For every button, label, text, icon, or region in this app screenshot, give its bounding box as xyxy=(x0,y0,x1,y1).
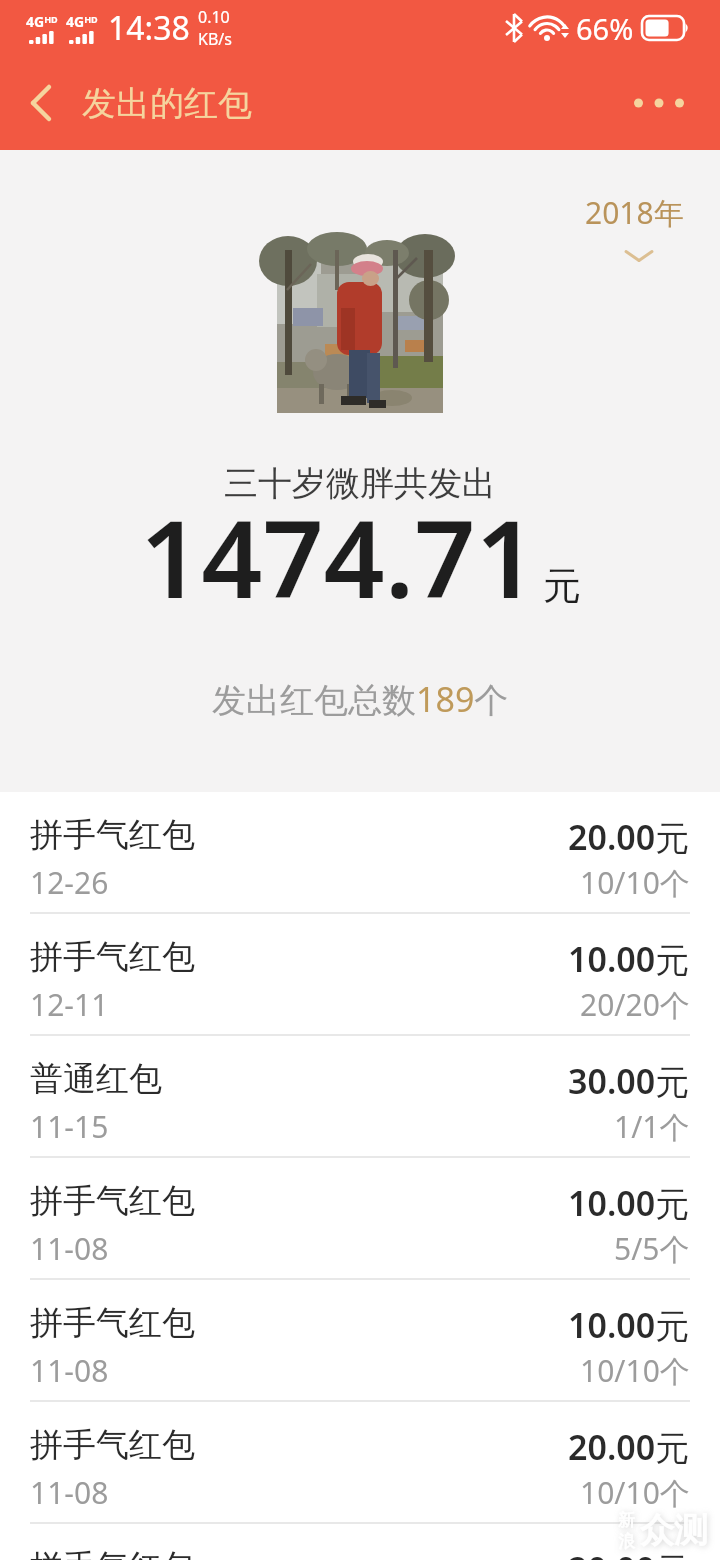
button[interactable]: 拼手气红包 xyxy=(0,1280,720,1402)
staticText: 10/10个 xyxy=(580,1472,690,1513)
staticText: 发出的红包 xyxy=(82,82,252,125)
button[interactable] xyxy=(634,97,684,109)
staticText: 11-08 xyxy=(30,1350,109,1391)
staticText: 20/20个 xyxy=(580,984,690,1025)
staticText: 10.00元 xyxy=(568,1302,690,1348)
staticText: 浪 xyxy=(618,1531,635,1552)
staticText: 11-08 xyxy=(30,1228,109,1269)
button[interactable]: 拼手气红包 xyxy=(0,1158,720,1280)
staticText: 普通红包 xyxy=(30,1058,162,1100)
button[interactable]: 普通红包 xyxy=(0,1036,720,1158)
staticText: 12-26 xyxy=(30,862,109,903)
staticText: 发出红包总数189个 xyxy=(212,676,509,722)
staticText: 12-11 xyxy=(30,984,109,1025)
staticText: 拼手气红包 xyxy=(30,936,195,978)
staticText: 10/10个 xyxy=(580,1350,690,1391)
staticText: 5/5个 xyxy=(614,1228,690,1269)
staticText: 元 xyxy=(543,562,581,610)
staticText: 66% xyxy=(576,9,634,48)
staticText: 30.00元 xyxy=(568,1058,690,1104)
button[interactable] xyxy=(30,85,52,121)
staticText: 10.00元 xyxy=(568,1180,690,1226)
staticText: 11-08 xyxy=(30,1472,109,1513)
staticText: 10.00元 xyxy=(568,936,690,982)
staticText: 1474.71 xyxy=(140,484,537,630)
staticText: 拼手气红包 xyxy=(30,1302,195,1344)
staticText: KB/s xyxy=(198,28,232,50)
staticText: 4Gᴴᴰ xyxy=(26,12,58,31)
staticText: 1/1个 xyxy=(614,1106,690,1147)
button[interactable]: 拼手气红包 xyxy=(0,914,720,1036)
staticText: 拼手气红包 xyxy=(30,1546,195,1560)
staticText: 众测 xyxy=(640,1509,708,1552)
staticText: 0.10 xyxy=(198,6,230,28)
staticText: 20.00元 xyxy=(568,814,690,860)
button[interactable]: 拼手气红包 xyxy=(0,1402,720,1524)
staticText: 拼手气红包 xyxy=(30,1180,195,1222)
staticText: 14:38 xyxy=(108,6,190,50)
button[interactable]: 拼手气红包 xyxy=(0,792,720,914)
staticText: 拼手气红包 xyxy=(30,814,195,856)
staticText: 三十岁微胖共发出 xyxy=(224,462,496,505)
staticText: 20.00元 xyxy=(568,1424,690,1470)
staticText: 4Gᴴᴰ xyxy=(66,12,98,31)
staticText: 20.00元 xyxy=(568,1546,690,1560)
button[interactable]: 2018年 xyxy=(585,192,684,233)
staticText: 新 xyxy=(618,1510,635,1531)
staticText: 11-15 xyxy=(30,1106,109,1147)
button[interactable]: 拼手气红包 xyxy=(0,1524,720,1560)
staticText: 10/10个 xyxy=(580,862,690,903)
staticText: 拼手气红包 xyxy=(30,1424,195,1466)
